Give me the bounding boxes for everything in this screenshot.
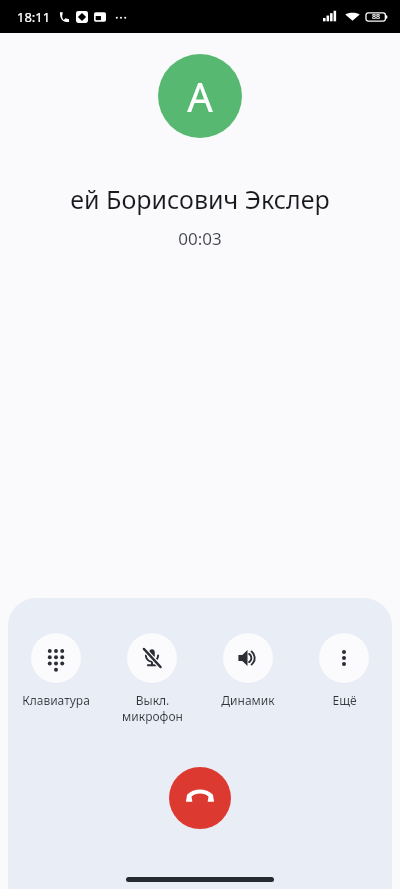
staticText: Выкл. микрофон [122,692,183,724]
staticText: Ещё [332,692,357,708]
button[interactable]: More options [298,633,390,708]
staticText: 00:03 [178,227,222,250]
staticText: 18:11 [17,8,51,26]
staticText: 88 [372,12,381,22]
button[interactable]: Dialpad [10,633,102,708]
staticText: Клавиатура [22,692,90,708]
button[interactable]: Mute microphone [106,633,198,724]
staticText: ей Борисович Экслер [70,182,330,216]
button[interactable]: End call [169,767,231,829]
button[interactable]: Speaker [202,633,294,708]
staticText: A [187,69,213,123]
staticText: Динамик [221,692,275,708]
